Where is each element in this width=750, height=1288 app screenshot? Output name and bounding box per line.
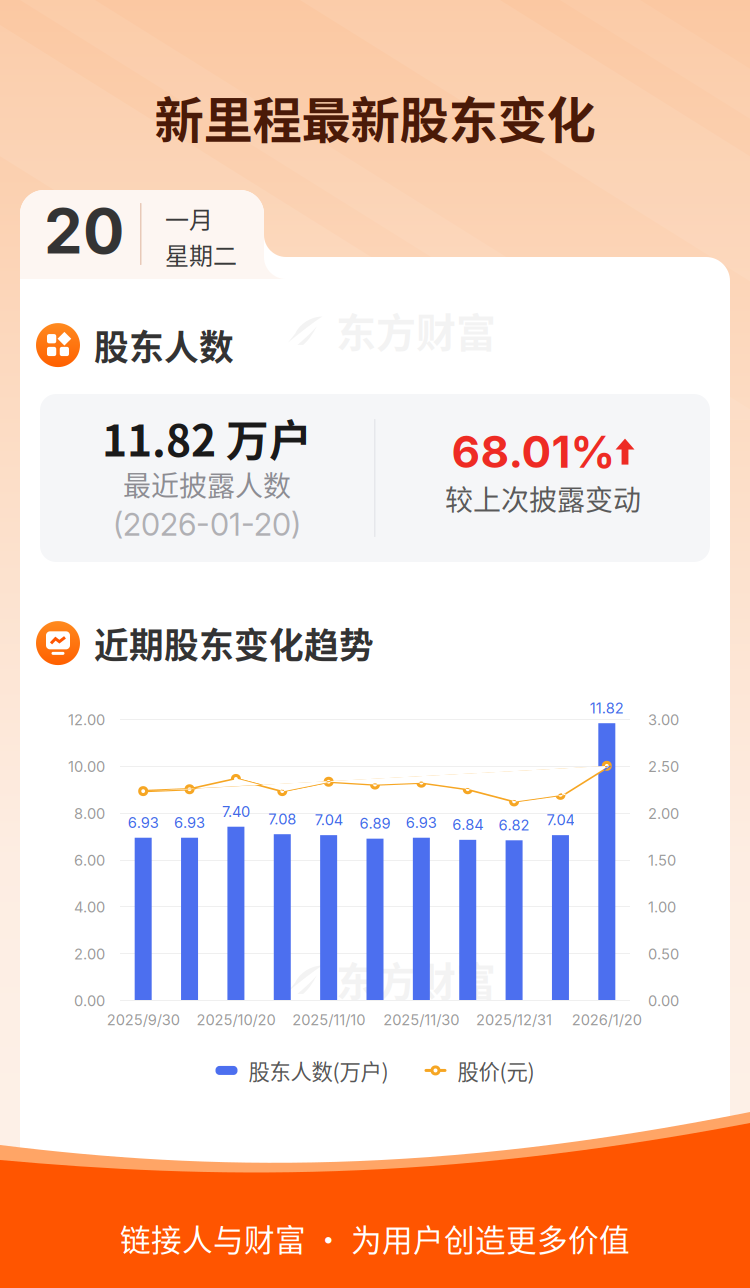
staticText: 3.00 xyxy=(648,711,679,729)
staticText: 链接人与财富 · 为用户创造更多价值 xyxy=(120,1216,630,1260)
staticText: 2026/1/20 xyxy=(572,1011,642,1029)
staticText: 7.04 xyxy=(546,811,574,829)
staticText: 0.00 xyxy=(648,992,679,1010)
staticText: 68.01% xyxy=(451,425,615,478)
staticText: 11.82 xyxy=(590,699,624,717)
staticText: 股东人数 xyxy=(94,320,234,370)
staticText: 股价(元) xyxy=(457,1055,534,1086)
staticText: 2025/12/31 xyxy=(476,1011,552,1029)
staticText: 东方财富 xyxy=(336,301,496,359)
staticText: 星期二 xyxy=(165,237,237,272)
staticText: 股东人数(万户) xyxy=(248,1055,388,1086)
staticText: 4.00 xyxy=(74,898,105,916)
staticText: 7.04 xyxy=(315,811,343,829)
staticText: 2.00 xyxy=(648,805,679,822)
staticText: 6.82 xyxy=(499,816,530,834)
staticText: 6.93 xyxy=(128,814,159,831)
staticText: 2.50 xyxy=(648,758,679,775)
staticText: 1.50 xyxy=(648,851,676,869)
staticText: 2025/11/30 xyxy=(383,1011,459,1029)
staticText: 2025/9/30 xyxy=(107,1011,180,1029)
staticText: 新里程最新股东变化 xyxy=(154,81,595,152)
staticText: 6.00 xyxy=(74,851,105,869)
staticText: 最近披露人数 xyxy=(123,464,291,504)
staticText: 12.00 xyxy=(68,711,105,729)
staticText: 2.00 xyxy=(74,945,105,963)
staticText: 7.40 xyxy=(222,803,250,820)
staticText: 6.93 xyxy=(406,814,437,831)
staticText: 近期股东变化趋势 xyxy=(94,618,374,668)
staticText: 8.00 xyxy=(74,805,105,822)
staticText: 6.89 xyxy=(359,815,390,832)
staticText: 2025/11/10 xyxy=(292,1011,365,1029)
staticText: 0.50 xyxy=(648,945,679,963)
staticText: 6.93 xyxy=(174,814,205,831)
staticText: 6.84 xyxy=(452,816,483,833)
staticText: 1.00 xyxy=(648,898,676,916)
staticText: 较上次披露变动 xyxy=(445,478,641,518)
staticText: 10.00 xyxy=(68,758,105,775)
staticText: 20 xyxy=(44,194,124,268)
staticText: 一月 xyxy=(165,201,213,236)
staticText: (2026-01-20) xyxy=(113,506,301,543)
staticText: 11.82 万户 xyxy=(102,407,312,469)
staticText: 东方财富 xyxy=(336,950,496,1008)
staticText: 0.00 xyxy=(74,992,105,1010)
staticText: 2025/10/20 xyxy=(196,1011,275,1029)
staticText: 7.08 xyxy=(268,810,296,828)
